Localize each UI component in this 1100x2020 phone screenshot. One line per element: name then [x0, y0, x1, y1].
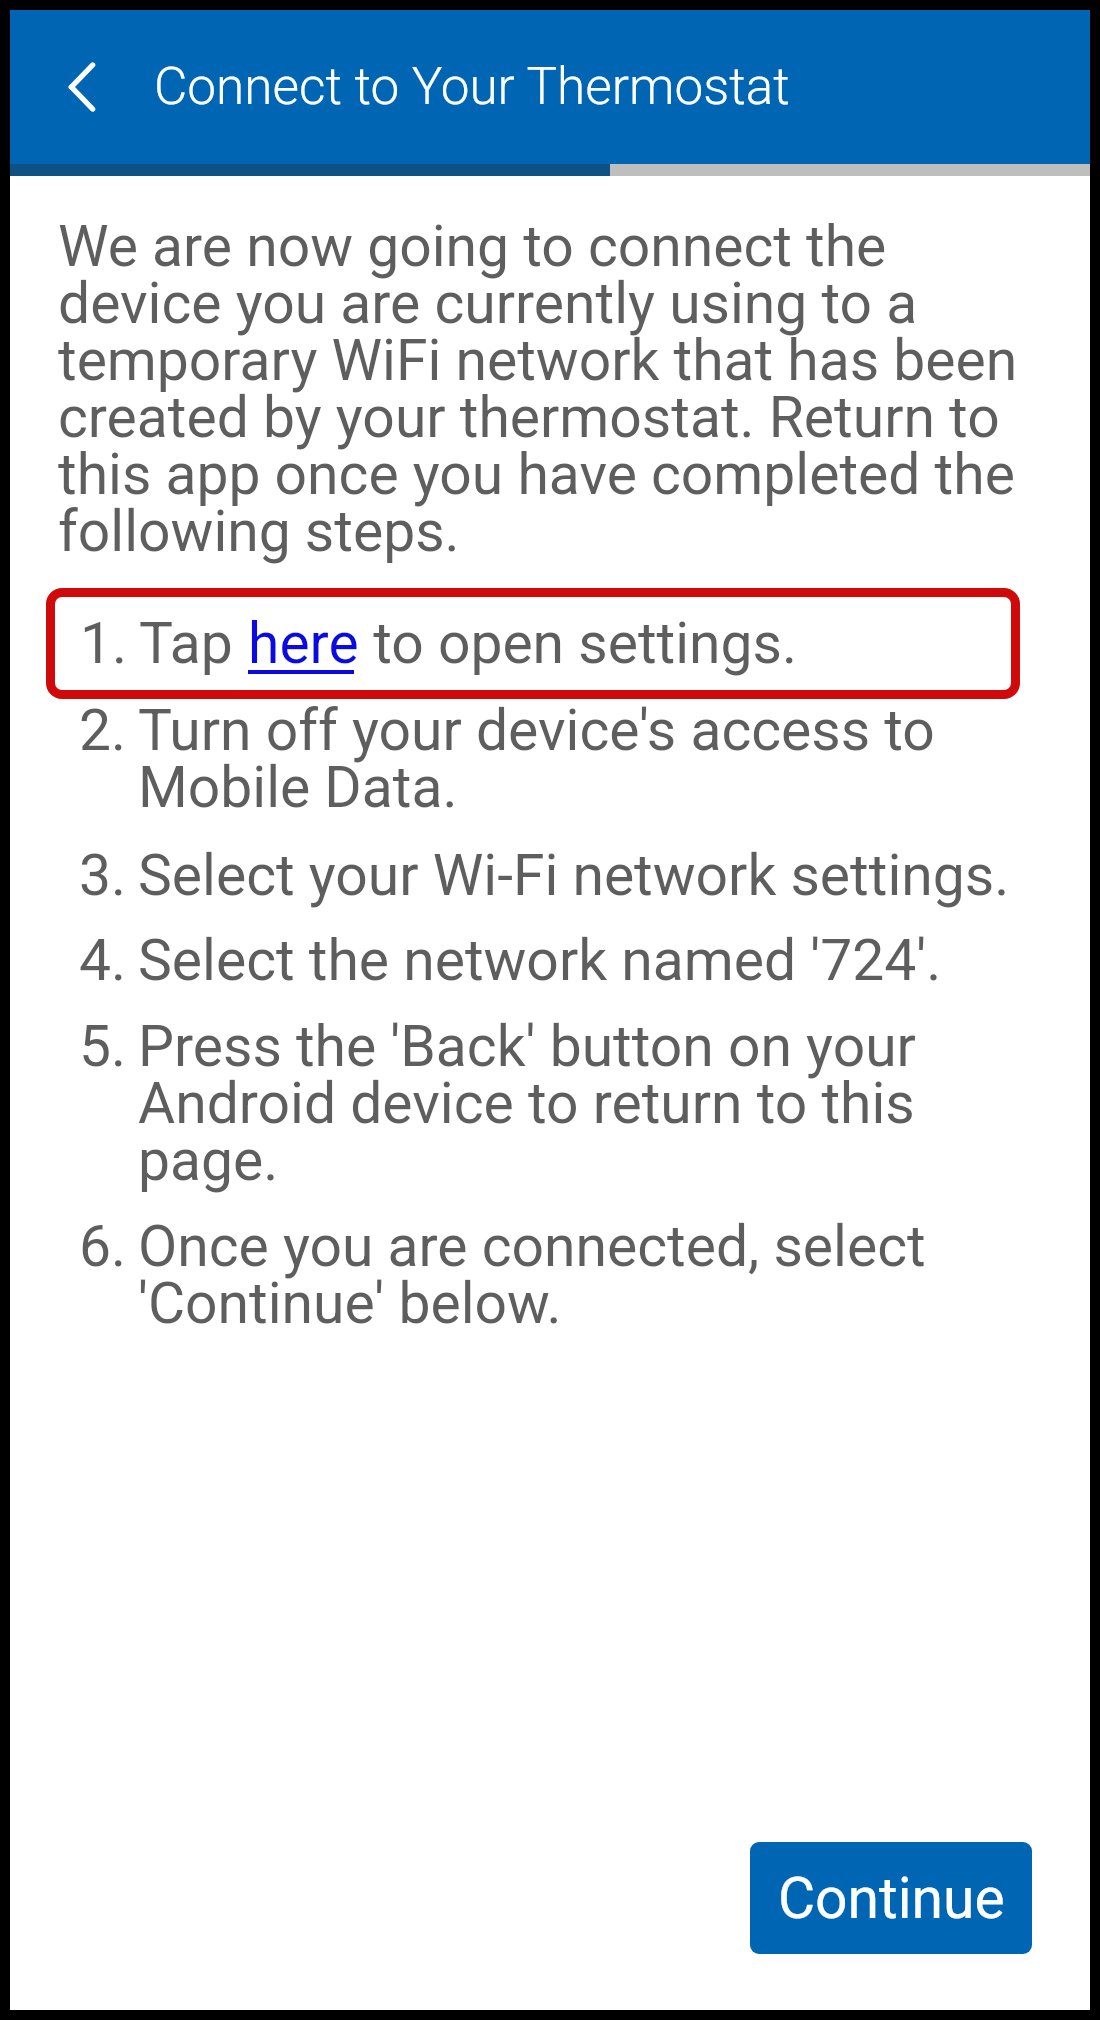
- staticText: We are now going to connect the device y…: [58, 213, 1033, 565]
- button[interactable]: Continue: [750, 1842, 1032, 1954]
- staticText: Continue: [778, 1865, 1005, 1932]
- staticText: 6.: [79, 1213, 138, 1280]
- staticText: Turn off your device's access to Mobile …: [138, 697, 1038, 821]
- button[interactable]: here: [248, 610, 359, 677]
- button[interactable]: 2.: [79, 697, 1038, 821]
- staticText: Once you are connected, select 'Continue…: [138, 1213, 1038, 1337]
- staticText: Press the 'Back' button on your Android …: [138, 1013, 1038, 1194]
- staticText: 2.: [79, 697, 138, 764]
- staticText: here: [248, 610, 359, 677]
- staticText: Select the network named '724'.: [138, 927, 1038, 994]
- button[interactable]: Back: [10, 10, 154, 164]
- staticText: 3.: [79, 842, 138, 909]
- button[interactable]: 4.: [79, 927, 1038, 994]
- staticText: Select your Wi-Fi network settings.: [138, 842, 1038, 909]
- staticText: 1.: [80, 610, 139, 677]
- button[interactable]: 6.: [79, 1213, 1038, 1337]
- staticText: 4.: [79, 927, 138, 994]
- staticText: to open settings.: [359, 610, 797, 677]
- button[interactable]: 3.: [79, 842, 1038, 909]
- staticText: 5.: [79, 1013, 138, 1080]
- staticText: Tap: [139, 610, 248, 677]
- button[interactable]: 5.: [79, 1013, 1038, 1194]
- button[interactable]: 1.: [46, 588, 1020, 699]
- staticText: Connect to Your Thermostat: [154, 56, 790, 116]
